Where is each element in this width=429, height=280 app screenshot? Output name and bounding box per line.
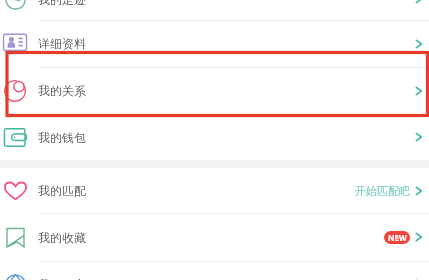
button[interactable]: My relationships bbox=[0, 67, 429, 114]
other: My matches bbox=[4, 179, 27, 202]
staticText: 开始匹配吧 bbox=[355, 184, 410, 198]
staticText: 我的语言 bbox=[38, 277, 86, 280]
staticText: 我的关系 bbox=[38, 83, 86, 98]
staticText: 详细资料 bbox=[38, 36, 86, 51]
other: My wallet bbox=[4, 126, 27, 149]
button[interactable]: Language bbox=[0, 261, 429, 280]
button[interactable]: My wallet bbox=[0, 114, 429, 160]
button[interactable]: Profile details bbox=[0, 20, 429, 67]
staticText: 我的匹配 bbox=[38, 183, 86, 198]
other: My relationships bbox=[4, 79, 27, 102]
button[interactable]: My matches bbox=[0, 168, 429, 213]
other: History bbox=[4, 0, 27, 11]
staticText: 我的收藏 bbox=[38, 230, 86, 245]
staticText: 我的足迹 bbox=[38, 0, 86, 7]
other: My favourites bbox=[4, 226, 27, 249]
button[interactable]: My favourites bbox=[0, 213, 429, 261]
button[interactable]: History bbox=[0, 0, 429, 20]
other: Profile details bbox=[4, 32, 27, 55]
other: Language bbox=[4, 273, 27, 280]
staticText: NEW bbox=[388, 232, 407, 243]
staticText: 我的钱包 bbox=[38, 130, 86, 145]
